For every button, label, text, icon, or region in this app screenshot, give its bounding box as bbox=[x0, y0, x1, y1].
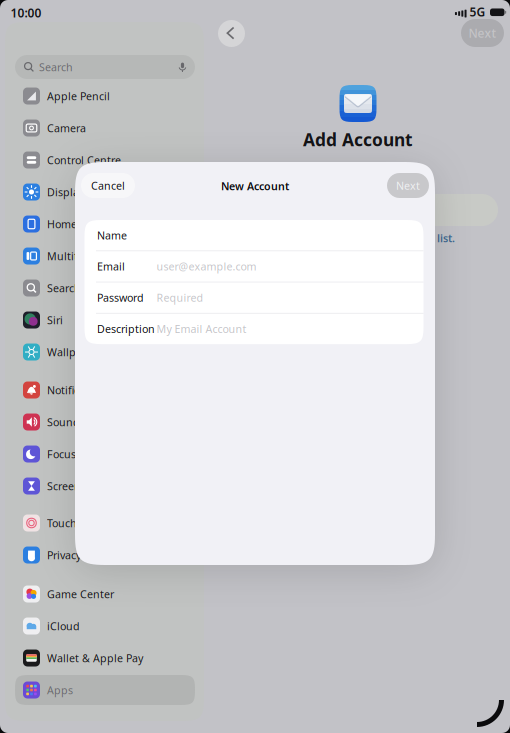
button[interactable]: Control Centre bbox=[15, 145, 195, 175]
button[interactable]: Next bbox=[387, 173, 429, 198]
staticText: Multitasking & Gestures bbox=[47, 249, 171, 263]
button[interactable]: Focus bbox=[15, 439, 195, 469]
staticText: Email bbox=[97, 259, 125, 274]
staticText: Wallpaper bbox=[47, 345, 99, 359]
staticText: Sounds bbox=[47, 415, 85, 429]
staticText: list. bbox=[437, 231, 455, 245]
button[interactable]: Wallet & Apple Pay bbox=[15, 643, 195, 673]
staticText: Touch ID & Passcode bbox=[47, 516, 152, 530]
button[interactable]: Search bbox=[15, 273, 195, 303]
button[interactable]: Apps bbox=[15, 675, 195, 705]
staticText: Next bbox=[396, 178, 420, 193]
button[interactable]: Multitasking & Gestures bbox=[15, 241, 195, 271]
staticText: user@example.com bbox=[156, 259, 256, 274]
button[interactable]: Notifications bbox=[15, 375, 195, 405]
button[interactable]: Home Screen & App Library bbox=[15, 209, 195, 239]
staticText: My Email Account bbox=[156, 322, 246, 336]
staticText: Screen Time bbox=[47, 479, 109, 493]
staticText: Home Screen & App Library bbox=[47, 217, 182, 231]
staticText: Control Centre bbox=[47, 153, 121, 167]
staticText: 10:00 bbox=[10, 5, 41, 21]
staticText: Search bbox=[39, 60, 73, 74]
staticText: Cancel bbox=[91, 178, 125, 193]
staticText: 5G bbox=[469, 4, 485, 20]
button[interactable]: Camera bbox=[15, 113, 195, 143]
staticText: Siri bbox=[47, 313, 63, 327]
button[interactable]: Back bbox=[218, 20, 245, 47]
staticText: Name bbox=[97, 228, 127, 242]
staticText: Search bbox=[47, 281, 81, 295]
staticText: Focus bbox=[47, 447, 76, 461]
button[interactable]: Game Center bbox=[15, 579, 195, 609]
staticText: Add Account bbox=[303, 128, 413, 151]
staticText: Game Center bbox=[47, 587, 114, 601]
staticText: Description bbox=[97, 322, 155, 336]
button[interactable]: Privacy & Security bbox=[15, 540, 195, 570]
button[interactable]: Wallpaper bbox=[15, 337, 195, 367]
button[interactable]: Apple Pencil bbox=[15, 81, 195, 111]
button[interactable]: Sounds bbox=[15, 407, 195, 437]
staticText: Next bbox=[468, 25, 496, 41]
button[interactable]: Siri bbox=[15, 305, 195, 335]
staticText: Required bbox=[156, 291, 203, 305]
staticText: Apple Pencil bbox=[47, 89, 110, 103]
staticText: Apps bbox=[47, 683, 73, 697]
button[interactable]: Next bbox=[461, 19, 504, 47]
button[interactable]: Cancel bbox=[81, 173, 135, 198]
staticText: Display & Brightness bbox=[47, 185, 153, 199]
staticText: Camera bbox=[47, 121, 86, 135]
button[interactable]: Screen Time bbox=[15, 471, 195, 501]
staticText: Wallet & Apple Pay bbox=[47, 651, 143, 665]
staticText: New Account bbox=[221, 179, 289, 193]
button[interactable]: Display & Brightness bbox=[15, 177, 195, 207]
staticText: Password bbox=[97, 291, 144, 305]
staticText: Notifications bbox=[47, 383, 110, 397]
button[interactable]: iCloud bbox=[15, 611, 195, 641]
button[interactable]: Touch ID & Passcode bbox=[15, 508, 195, 538]
staticText: iCloud bbox=[47, 619, 80, 633]
staticText: Privacy & Security bbox=[47, 548, 135, 562]
